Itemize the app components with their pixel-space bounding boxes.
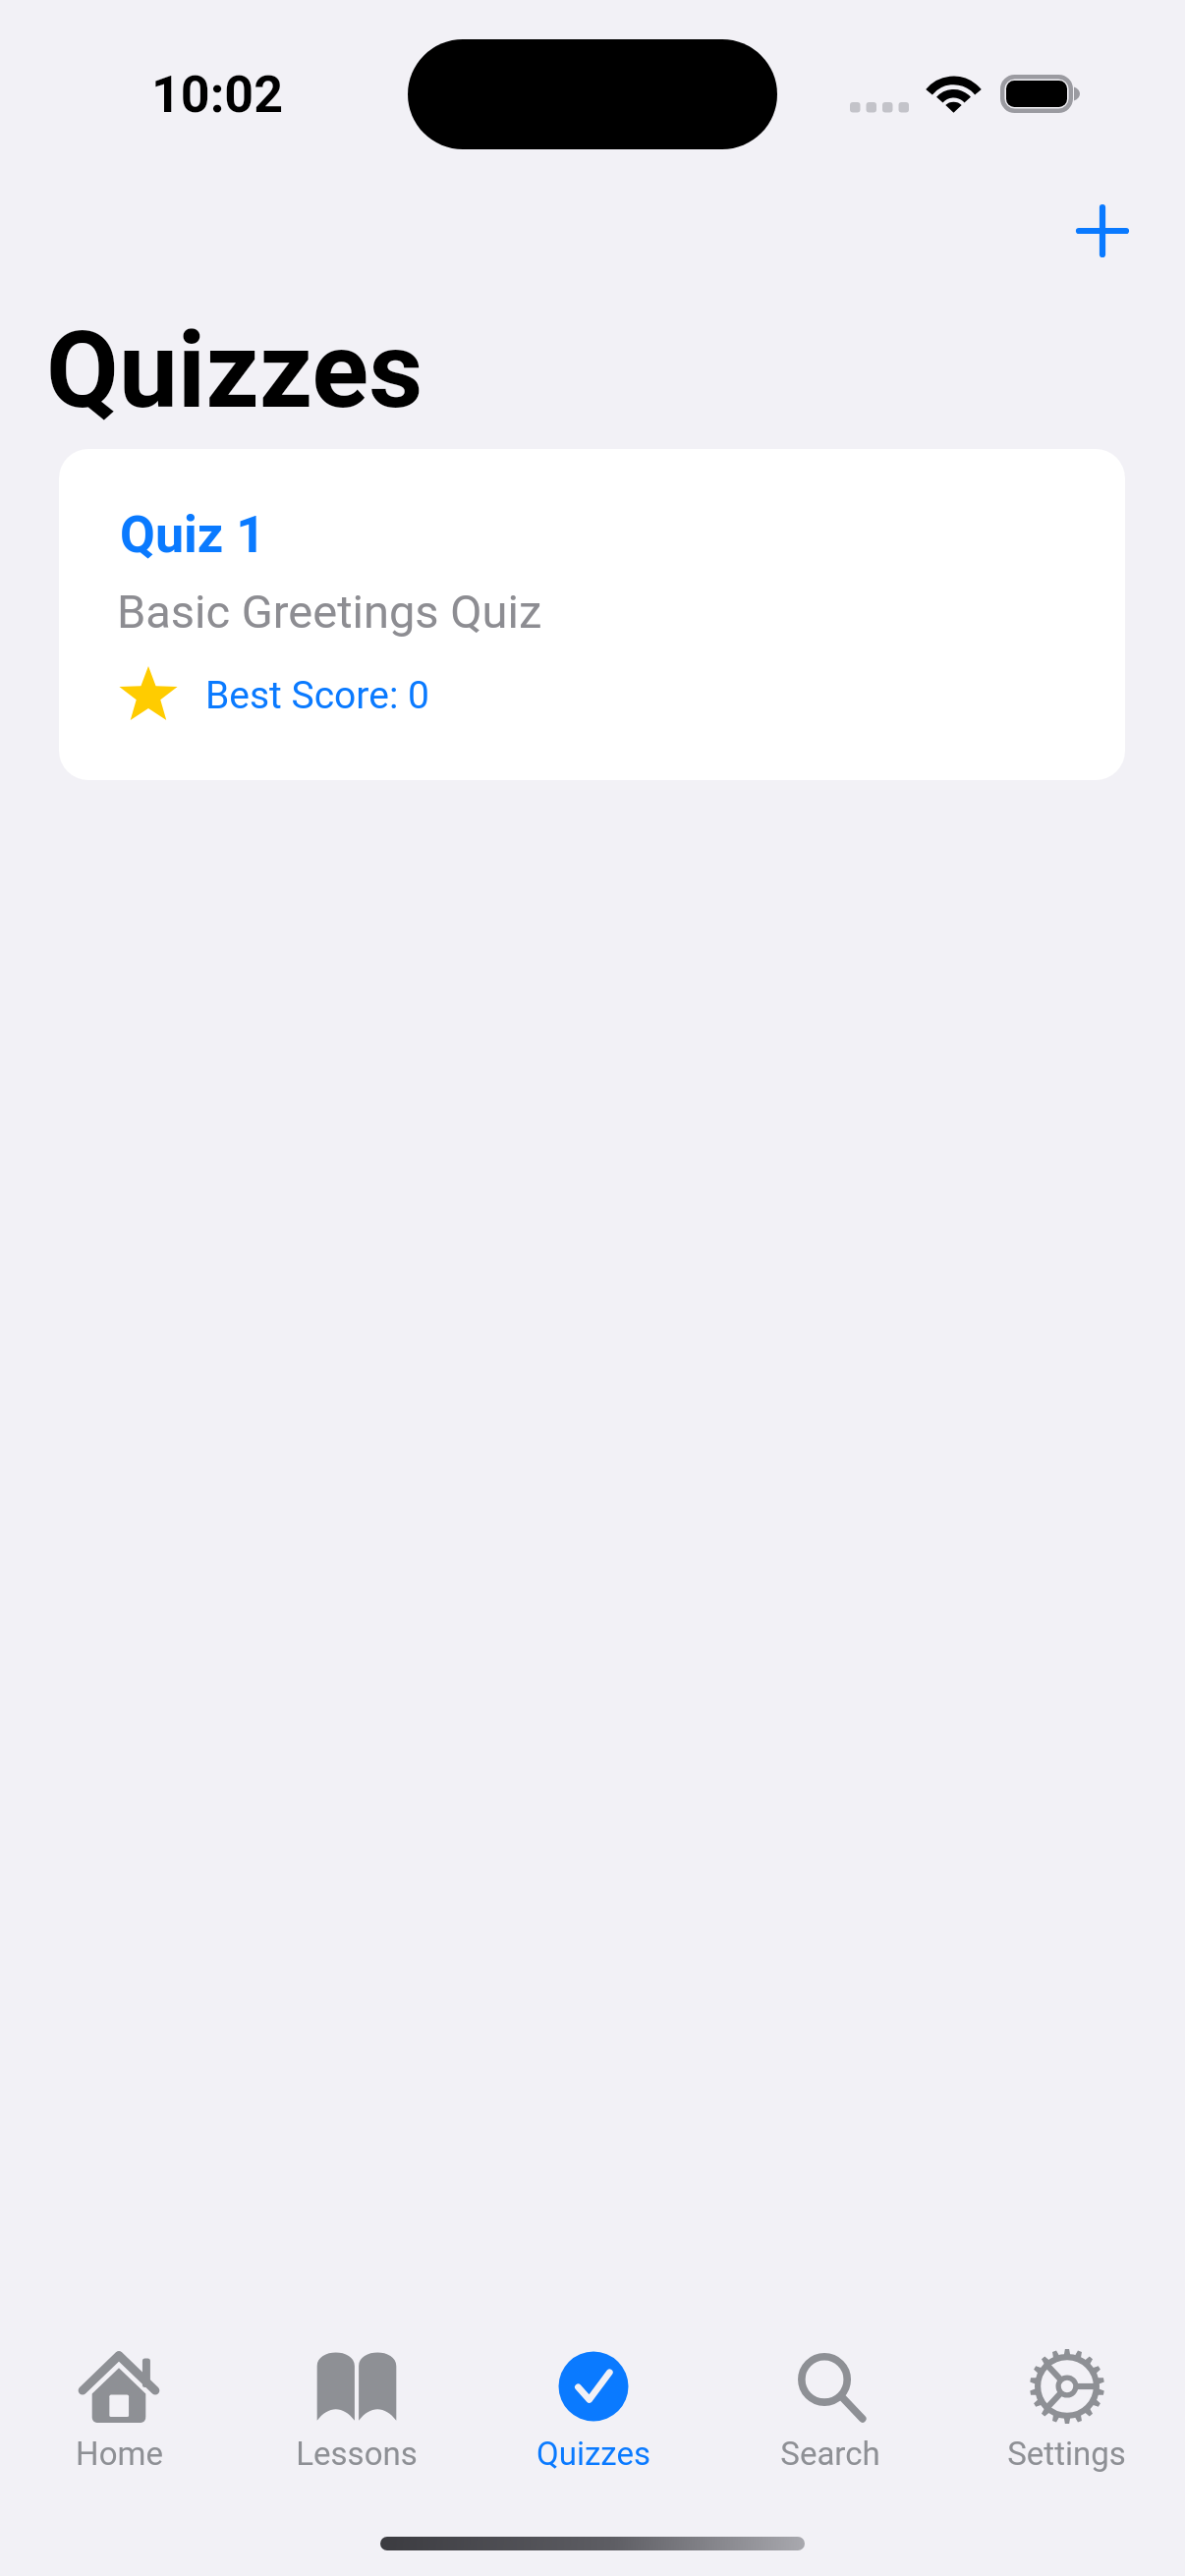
staticText: 10:02 (151, 65, 284, 125)
button[interactable]: Quiz 1 (59, 449, 1125, 780)
staticText: Lessons (296, 2435, 418, 2473)
staticText: Search (780, 2435, 880, 2473)
staticText: Quiz 1 (120, 505, 266, 565)
button[interactable]: Settings (948, 2338, 1185, 2476)
button[interactable]: Add quiz (1044, 172, 1161, 290)
button[interactable]: Home (0, 2338, 238, 2476)
button[interactable]: Lessons (238, 2338, 475, 2476)
staticText: Quizzes (46, 309, 423, 432)
staticText: Quizzes (536, 2435, 650, 2473)
button[interactable]: Quizzes (475, 2338, 711, 2476)
staticText: Best Score: 0 (205, 673, 429, 718)
button[interactable]: Search (711, 2338, 948, 2476)
staticText: Basic Greetings Quiz (117, 585, 542, 639)
staticText: Home (76, 2435, 163, 2473)
staticText: Settings (1007, 2435, 1126, 2473)
